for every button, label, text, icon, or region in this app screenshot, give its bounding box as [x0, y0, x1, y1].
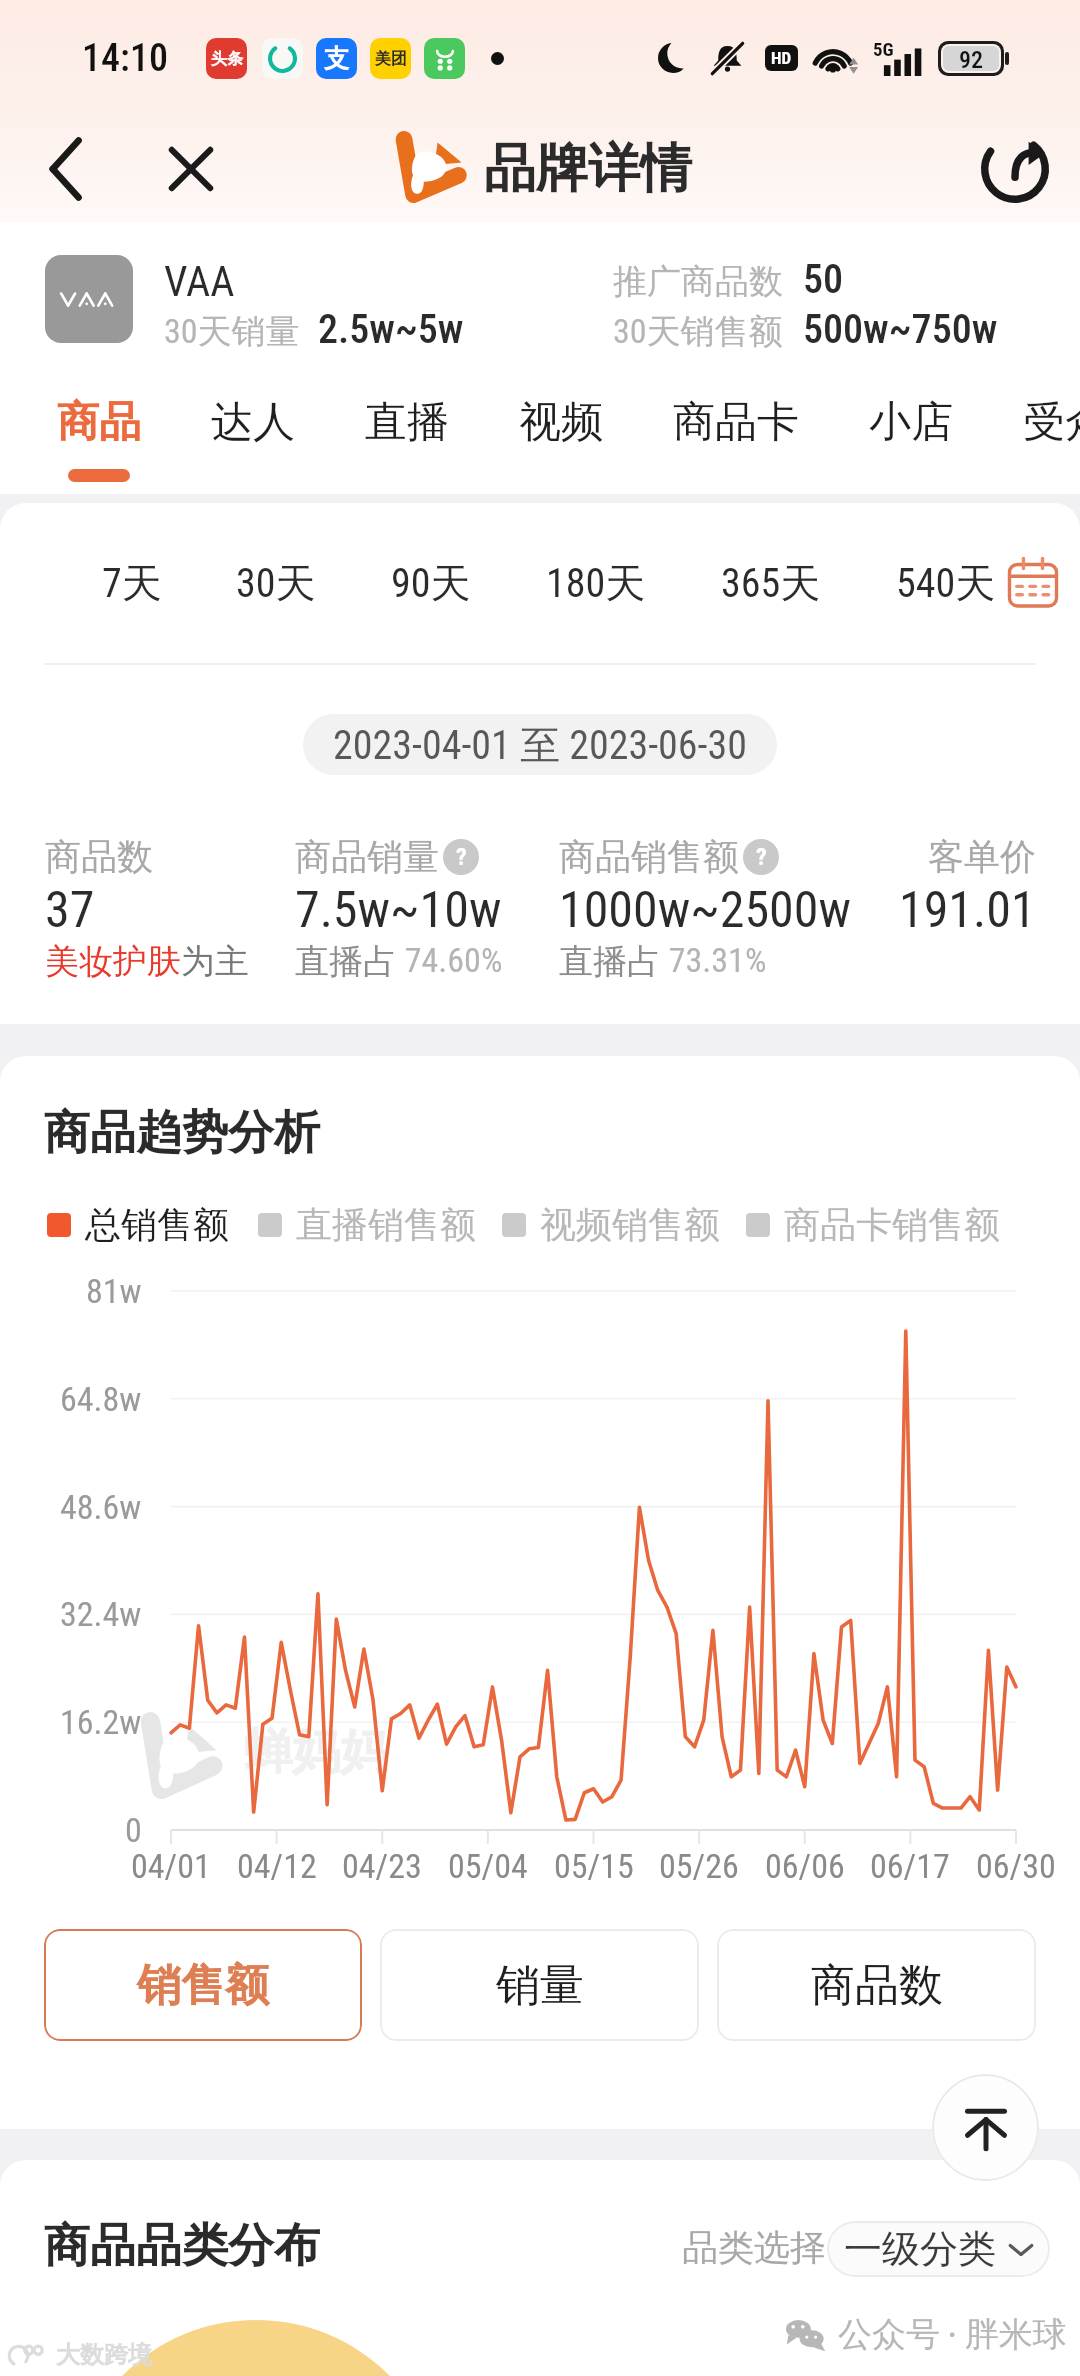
staticText: 直播销售额	[296, 1202, 476, 1247]
button[interactable]: 销量	[380, 1929, 699, 2041]
staticText: 商品销售额	[559, 834, 739, 879]
staticText: ?	[456, 843, 467, 871]
button[interactable]: 90天	[391, 558, 471, 608]
staticText: 视频	[519, 396, 603, 449]
staticText: 商品数	[811, 1958, 943, 2013]
button[interactable]: 商品卡销售额	[746, 1202, 1000, 1247]
button[interactable]: 商品卡	[673, 354, 799, 469]
staticText: 2023-04-01 至 2023-06-30	[333, 720, 747, 770]
staticText: 05/04	[448, 1846, 528, 1886]
staticText: 蝉妈妈	[244, 1722, 388, 1782]
staticText: 美妆护肤	[45, 940, 181, 983]
staticText: 74.60%	[397, 940, 503, 980]
staticText: 50	[803, 256, 844, 303]
staticText: 支	[324, 43, 349, 74]
button[interactable]: 小店	[869, 354, 953, 469]
button[interactable]: Close	[152, 130, 230, 208]
staticText: 92	[959, 46, 984, 71]
staticText: 37	[45, 881, 95, 940]
staticText: 0	[125, 1810, 142, 1850]
staticText: 直播	[365, 396, 449, 449]
staticText: 7.5w~10w	[295, 881, 502, 940]
staticText: 受众	[1023, 396, 1080, 449]
staticText: 04/23	[342, 1846, 422, 1886]
staticText: HD	[771, 48, 792, 68]
staticText: 73.31%	[661, 940, 767, 980]
staticText: 销量	[496, 1958, 584, 2013]
staticText: 推广商品数	[613, 260, 783, 303]
staticText: 直播占	[559, 940, 661, 983]
staticText: 一级分类	[844, 2225, 996, 2273]
button[interactable]: 180天	[546, 558, 646, 608]
staticText: 头条	[211, 49, 243, 69]
button[interactable]: Back	[26, 130, 104, 208]
staticText: 商品卡销售额	[784, 1202, 1000, 1247]
button[interactable]: 受众	[1023, 354, 1080, 469]
button[interactable]: 总销售额	[47, 1202, 229, 1247]
staticText: 500w~750w	[803, 306, 998, 353]
staticText: 2.5w~5w	[318, 306, 464, 353]
staticText: 5G	[873, 38, 894, 60]
staticText: 06/06	[765, 1846, 845, 1886]
staticText: 小店	[869, 396, 953, 449]
staticText: 06/17	[870, 1846, 950, 1886]
staticText: 大数跨境	[56, 2340, 152, 2370]
button[interactable]: Select date range	[1000, 550, 1066, 616]
staticText: 商品	[57, 396, 141, 449]
staticText: 公众号 · 胖米球	[838, 2313, 1067, 2356]
staticText: 客单价	[928, 834, 1036, 879]
staticText: 品类选择	[682, 2225, 826, 2270]
staticText: VAA	[164, 257, 235, 306]
staticText: 32.4w	[60, 1594, 142, 1634]
button[interactable]: Scroll to top	[932, 2074, 1039, 2181]
staticText: 商品趋势分析	[44, 1104, 320, 1162]
button[interactable]: 直播	[365, 354, 449, 469]
staticText: 达人	[211, 396, 295, 449]
staticText: 06/30	[976, 1846, 1056, 1886]
button[interactable]: 视频	[519, 354, 603, 469]
staticText: ?	[756, 843, 767, 871]
button[interactable]: Refresh	[972, 126, 1058, 212]
staticText: 05/26	[659, 1846, 739, 1886]
button[interactable]: 直播销售额	[258, 1202, 476, 1247]
staticText: 30天销量	[164, 310, 300, 353]
staticText: 48.6w	[60, 1487, 142, 1527]
staticText: 81w	[86, 1271, 142, 1311]
button[interactable]: 540天	[896, 558, 996, 608]
staticText: 为主	[181, 940, 249, 983]
staticText: 04/01	[131, 1846, 211, 1886]
button[interactable]: 7天	[102, 558, 162, 608]
button[interactable]: 销售额	[44, 1929, 362, 2041]
staticText: 商品销量	[295, 834, 439, 879]
staticText: 销售额	[137, 1958, 269, 2013]
staticText: 04/12	[237, 1846, 317, 1886]
button[interactable]: 商品数	[717, 1929, 1036, 2041]
staticText: 191.01	[899, 881, 1036, 940]
button[interactable]: 视频销售额	[502, 1202, 720, 1247]
button[interactable]: 2023-04-01 至 2023-06-30	[303, 714, 777, 775]
button[interactable]: 达人	[211, 354, 295, 469]
button[interactable]: 一级分类	[827, 2221, 1050, 2277]
staticText: 美团	[375, 49, 407, 69]
staticText: 直播占	[295, 940, 397, 983]
staticText: 05/15	[554, 1846, 634, 1886]
staticText: 14:10	[82, 36, 168, 81]
staticText: 64.8w	[60, 1379, 142, 1419]
button[interactable]: 30天	[236, 558, 316, 608]
staticText: 商品品类分布	[44, 2217, 320, 2275]
staticText: 1000w~2500w	[559, 881, 851, 940]
staticText: 商品数	[45, 834, 153, 879]
button[interactable]: 365天	[721, 558, 821, 608]
staticText: 16.2w	[60, 1702, 142, 1742]
staticText: 商品卡	[673, 396, 799, 449]
staticText: 品牌详情	[484, 136, 692, 202]
staticText: 30天销售额	[613, 310, 783, 353]
staticText: 视频销售额	[540, 1202, 720, 1247]
staticText: 总销售额	[85, 1202, 229, 1247]
button[interactable]: 商品	[57, 354, 141, 482]
